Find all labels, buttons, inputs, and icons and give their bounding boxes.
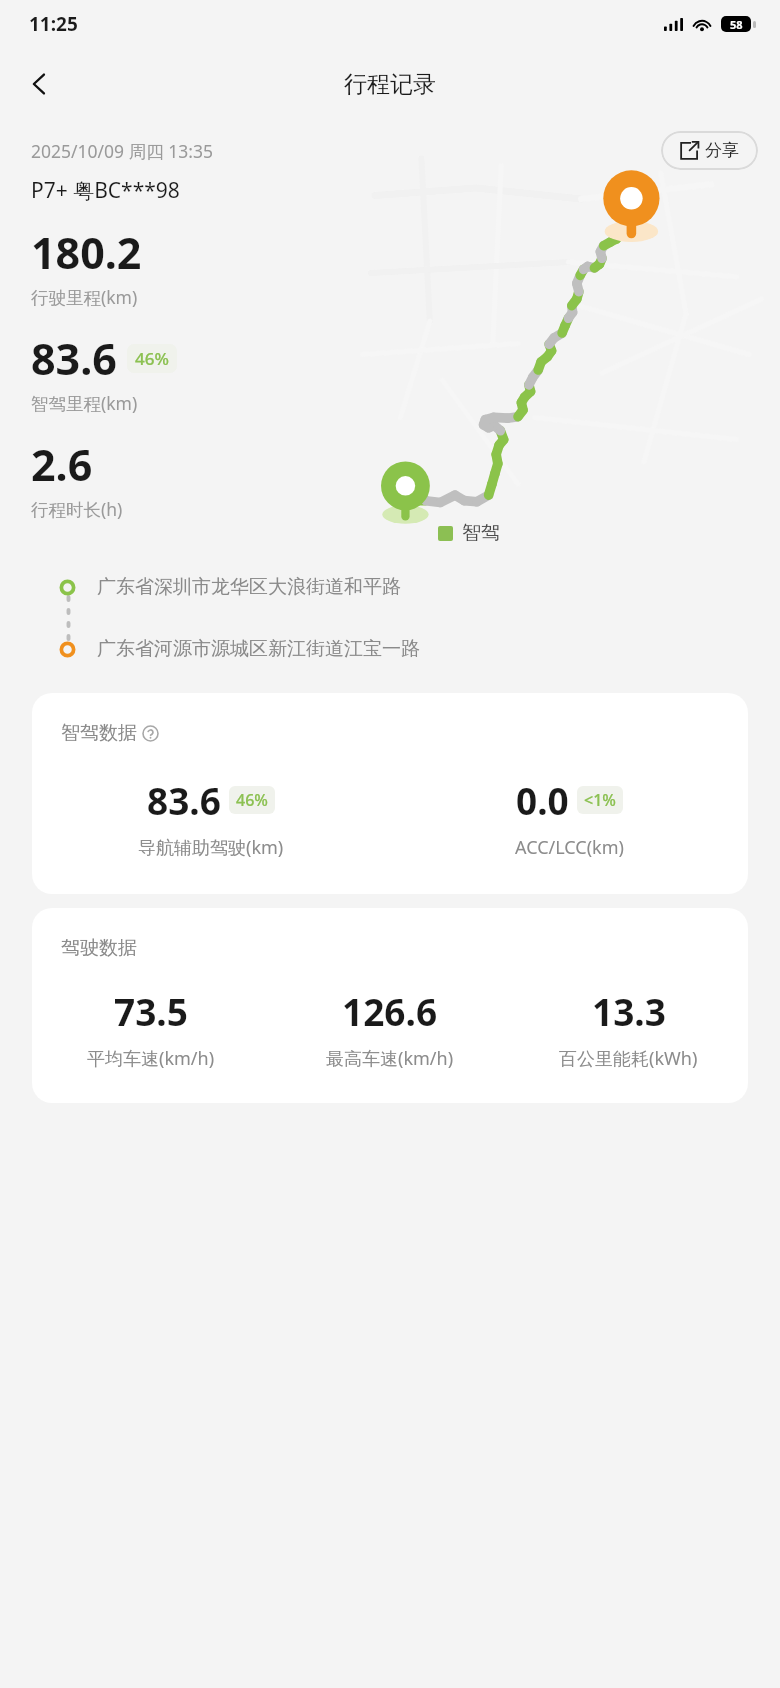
staticText: 驾驶数据 <box>61 936 137 960</box>
staticText: 83.6 <box>31 329 117 388</box>
button[interactable]: Back <box>14 58 66 110</box>
staticText: 13.3 <box>592 986 666 1036</box>
staticText: 46% <box>135 347 169 370</box>
button[interactable]: 广东省河源市源城区新江街道江宝一路 <box>0 637 780 661</box>
staticText: 导航辅助驾驶(km) <box>138 835 284 860</box>
staticText: 126.6 <box>342 986 438 1036</box>
staticText: 智驾数据 <box>61 721 137 745</box>
staticText: 广东省河源市源城区新江街道江宝一路 <box>97 637 420 661</box>
staticText: 行程记录 <box>344 70 436 99</box>
staticText: 0.0 <box>516 775 569 825</box>
button[interactable]: 广东省深圳市龙华区大浪街道和平路 <box>0 575 780 599</box>
button[interactable]: 驾驶数据 <box>32 908 748 1103</box>
staticText: 百公里能耗(kWh) <box>559 1046 698 1071</box>
staticText: P7+ 粤BC***98 <box>31 176 180 205</box>
staticText: 最高车速(km/h) <box>326 1046 454 1071</box>
staticText: 11:25 <box>29 11 78 37</box>
staticText: 180.2 <box>31 223 142 282</box>
staticText: 智驾里程(km) <box>31 391 138 415</box>
staticText: 83.6 <box>147 775 221 825</box>
staticText: 2.6 <box>31 435 93 494</box>
staticText: ACC/LCC(km) <box>515 835 624 860</box>
button[interactable]: 分享 <box>661 131 758 170</box>
staticText: 2025/10/09 周四 13:35 <box>31 139 213 163</box>
staticText: 58 <box>730 17 743 32</box>
staticText: 行程时长(h) <box>31 497 123 521</box>
staticText: 73.5 <box>114 986 188 1036</box>
staticText: 行驶里程(km) <box>31 285 138 309</box>
staticText: <1% <box>584 789 616 811</box>
staticText: 智驾 <box>462 521 500 545</box>
button[interactable]: 智驾数据 <box>32 693 748 894</box>
staticText: 分享 <box>705 140 739 161</box>
staticText: 平均车速(km/h) <box>87 1046 215 1071</box>
staticText: 广东省深圳市龙华区大浪街道和平路 <box>97 575 401 599</box>
staticText: 46% <box>236 789 268 811</box>
